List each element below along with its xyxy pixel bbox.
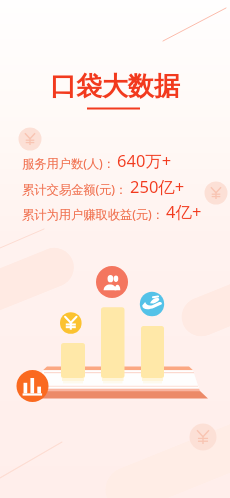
staticText: 累计为用户赚取收益(元)： [22, 206, 164, 223]
staticText: 4亿+ [166, 200, 202, 223]
staticText: 口袋大数据 [50, 70, 180, 103]
staticText: 250亿+ [130, 175, 185, 198]
staticText: 服务用户数(人)： [22, 155, 115, 172]
staticText: 累计交易金额(元)： [22, 181, 128, 198]
staticText: 640万+ [117, 149, 172, 172]
